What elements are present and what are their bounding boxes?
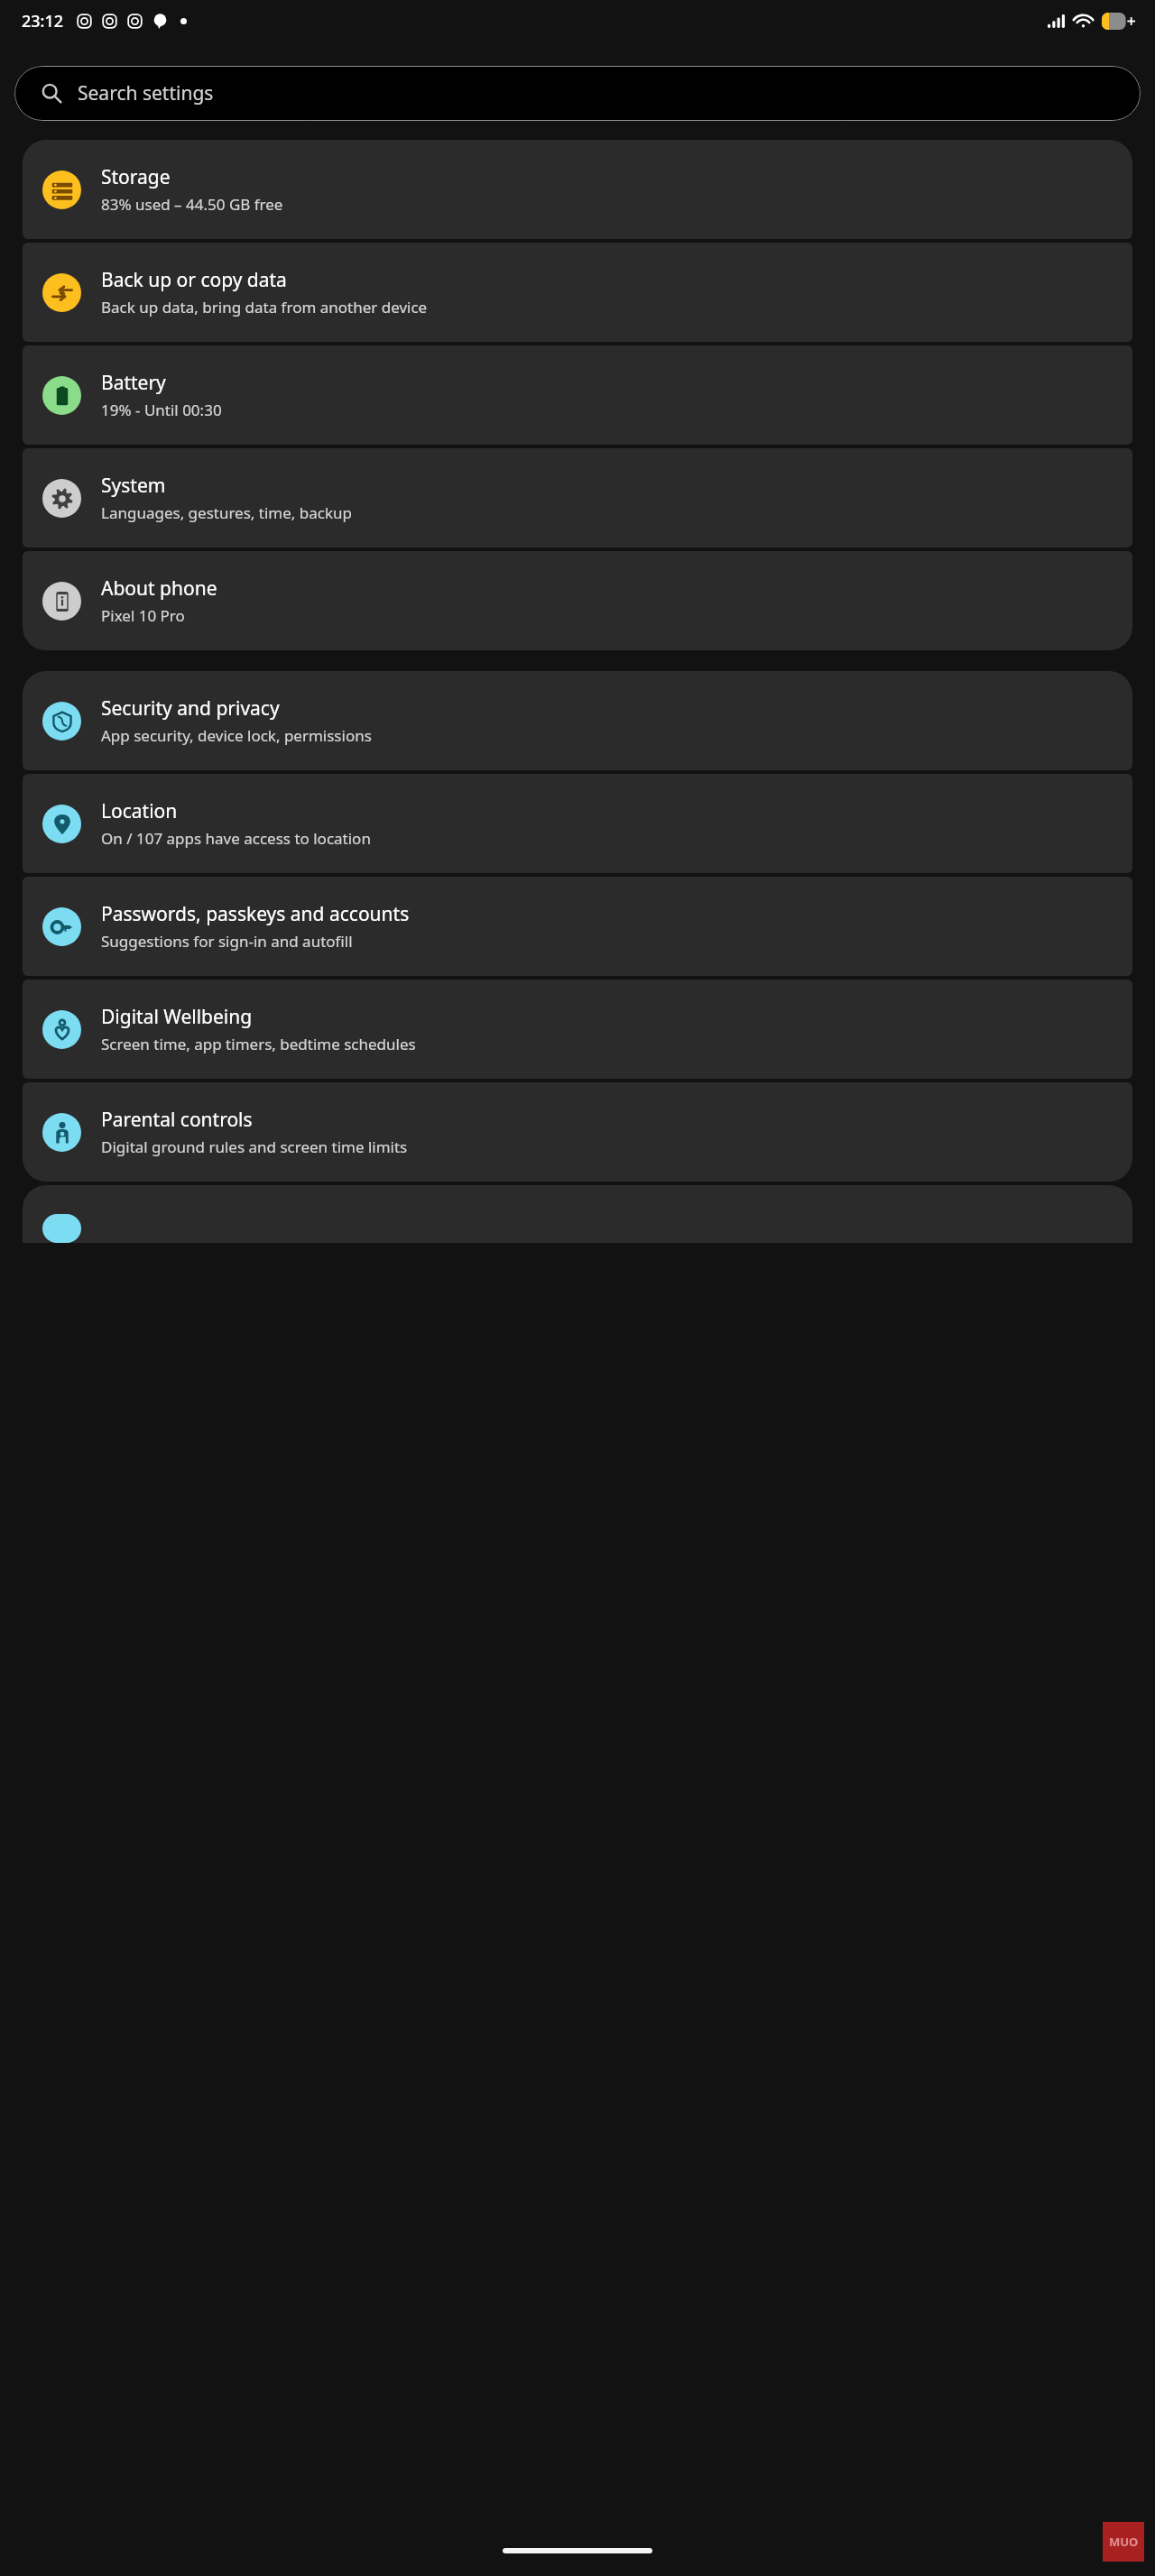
staticText: MUO <box>1109 2534 1139 2550</box>
staticText: App security, device lock, permissions <box>101 725 372 746</box>
staticText: Location <box>101 798 178 824</box>
button[interactable]: About phone <box>23 551 1132 650</box>
staticText: Back up data, bring data from another de… <box>101 297 428 317</box>
staticText: Suggestions for sign-in and autofill <box>101 931 353 952</box>
button[interactable]: Battery <box>23 345 1132 445</box>
staticText: Languages, gestures, time, backup <box>101 502 353 523</box>
staticText: Passwords, passkeys and accounts <box>101 901 410 927</box>
staticText: 23:12 <box>22 10 64 32</box>
button[interactable]: System <box>23 448 1132 547</box>
button[interactable]: More settings <box>23 1185 1132 1243</box>
staticText: 83% used – 44.50 GB free <box>101 194 283 215</box>
staticText: 19% - Until 00:30 <box>101 400 222 420</box>
staticText: Security and privacy <box>101 695 280 722</box>
button[interactable]: Storage <box>23 140 1132 239</box>
button[interactable]: Back up or copy data <box>23 243 1132 342</box>
staticText: Back up or copy data <box>101 267 287 293</box>
staticText: Digital ground rules and screen time lim… <box>101 1136 408 1157</box>
button[interactable]: Location <box>23 774 1132 873</box>
button[interactable]: Search settings <box>14 66 1141 121</box>
button[interactable]: Security and privacy <box>23 671 1132 770</box>
staticText: Search settings <box>78 80 214 106</box>
staticText: On / 107 apps have access to location <box>101 828 371 849</box>
button[interactable]: Digital Wellbeing <box>23 980 1132 1079</box>
button[interactable]: Parental controls <box>23 1082 1132 1182</box>
staticText: Battery <box>101 370 166 396</box>
staticText: Screen time, app timers, bedtime schedul… <box>101 1034 416 1054</box>
staticText: Storage <box>101 164 171 190</box>
staticText: Pixel 10 Pro <box>101 605 185 626</box>
button[interactable]: Passwords, passkeys and accounts <box>23 877 1132 976</box>
staticText: System <box>101 473 166 499</box>
staticText: Parental controls <box>101 1107 253 1133</box>
staticText: Digital Wellbeing <box>101 1004 253 1030</box>
staticText: About phone <box>101 575 217 602</box>
